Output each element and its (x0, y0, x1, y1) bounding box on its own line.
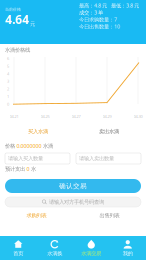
button[interactable]: 求购列表 (0, 211, 73, 220)
staticText: 0.0000000 (16, 142, 41, 150)
staticText: 04-27 (71, 114, 80, 119)
staticText: 预计支出 (5, 166, 25, 172)
staticText: 1 (7, 94, 9, 99)
staticText: 请输入买入数量 (8, 155, 43, 162)
staticText: 水 (31, 166, 36, 172)
staticText: 04-25 (40, 114, 49, 119)
staticText: 3 (7, 79, 9, 84)
staticText: 最高：4.8 元 最低：3.8 元 (79, 2, 139, 9)
staticText: 04-29 (102, 114, 111, 119)
button[interactable]: 确认交易 (5, 179, 141, 193)
staticText: 水滴 (43, 143, 53, 149)
staticText: 当前价格 (5, 7, 21, 12)
button[interactable]: 水滴换 (36, 236, 73, 260)
staticText: 今日求购数量：7 (79, 16, 117, 23)
staticText: 5 (7, 63, 9, 69)
staticText: 我的 (123, 250, 133, 257)
staticText: 4.64 (5, 11, 29, 27)
staticText: 价格 (5, 143, 15, 149)
staticText: 04-30 (133, 114, 142, 119)
button[interactable]: 水滴交易 (73, 236, 109, 260)
staticText: 请输入卖出数量 (79, 155, 114, 162)
staticText: 6 (7, 56, 9, 61)
staticText: 今日出售数量：10 (79, 23, 120, 30)
button[interactable]: 请输入对方手机号码查询 (5, 197, 141, 207)
staticText: 买入水滴 (28, 128, 48, 135)
staticText: 水滴价格线 (5, 47, 30, 53)
button[interactable]: 我的 (109, 236, 146, 260)
staticText: 卖出水滴 (99, 128, 119, 135)
staticText: 水滴换 (47, 250, 62, 257)
staticText: 4 (7, 71, 9, 76)
staticText: 请输入对方手机号码查询 (49, 199, 104, 205)
staticText: 出售列表 (99, 212, 119, 219)
button[interactable]: 首页 (0, 236, 36, 260)
staticText: 2 (7, 86, 9, 91)
staticText: 确认交易 (59, 182, 87, 190)
staticText: 水滴交易 (81, 250, 101, 257)
staticText: 求购列表 (26, 212, 46, 219)
staticText: 首页 (13, 250, 23, 257)
staticText: 04-21 (9, 114, 18, 119)
button[interactable]: 出售列表 (73, 211, 146, 220)
staticText: 元 (30, 21, 35, 27)
staticText: 成交：3 单 (79, 9, 103, 16)
staticText: 0 (7, 101, 9, 107)
staticText: 0 (26, 165, 29, 173)
